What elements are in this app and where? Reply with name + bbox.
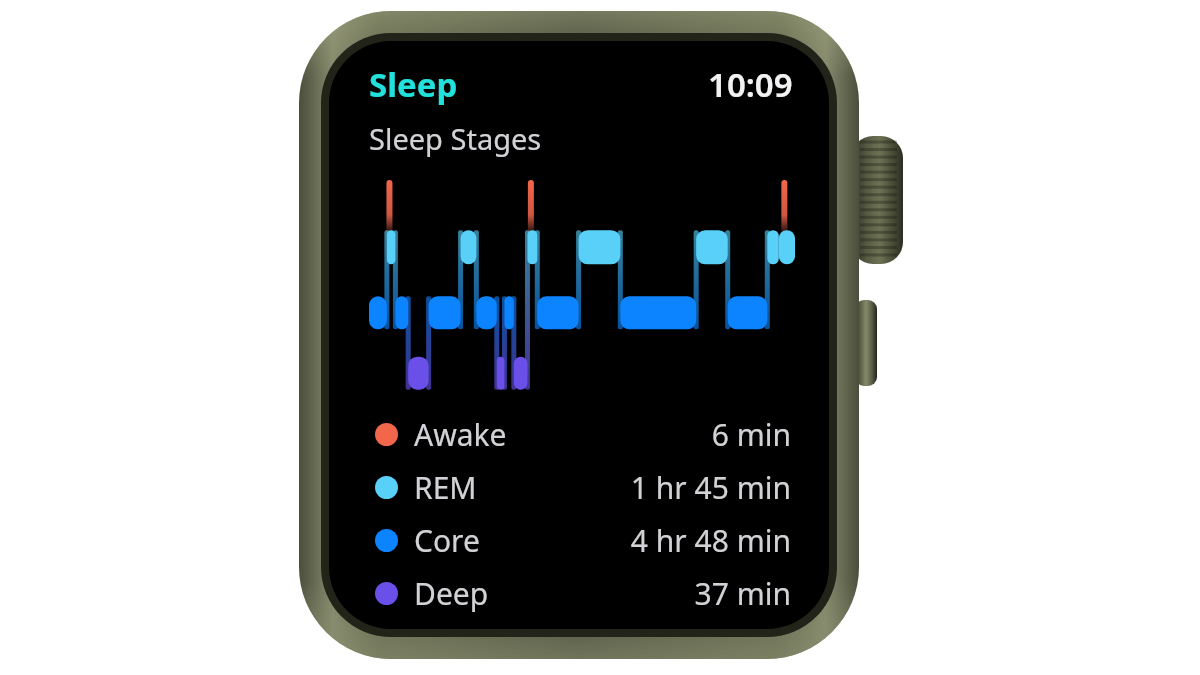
staticText: Awake	[414, 414, 507, 455]
staticText: 4 hr 48 min	[630, 520, 791, 561]
staticText: 37 min	[694, 573, 791, 614]
button[interactable]: Sleep stages chart	[331, 172, 823, 400]
staticText: 10:09	[708, 62, 793, 107]
button[interactable]: Deep	[331, 567, 823, 620]
button[interactable]: Awake	[331, 408, 823, 461]
staticText: Deep	[414, 573, 489, 614]
button[interactable]: Core	[331, 514, 823, 567]
staticText: Core	[414, 520, 480, 561]
button[interactable]: Sleep	[369, 62, 458, 107]
staticText: 6 min	[711, 414, 791, 455]
button[interactable]: REM	[331, 461, 823, 514]
staticText: 1 hr 45 min	[630, 467, 791, 508]
staticText: REM	[414, 467, 477, 508]
staticText: Sleep Stages	[369, 119, 542, 158]
